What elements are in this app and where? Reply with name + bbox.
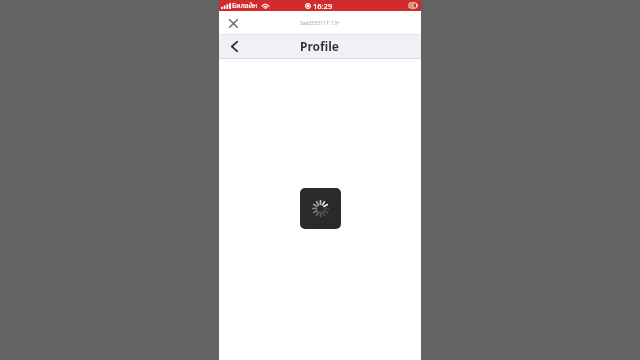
button[interactable]: Close <box>223 13 243 33</box>
staticText: Profile <box>300 38 340 54</box>
staticText: Билайн <box>232 1 258 11</box>
staticText: Sad2555117: 13+ <box>300 20 340 27</box>
staticText: 16:29 <box>313 1 333 11</box>
button[interactable]: Back <box>223 35 245 57</box>
